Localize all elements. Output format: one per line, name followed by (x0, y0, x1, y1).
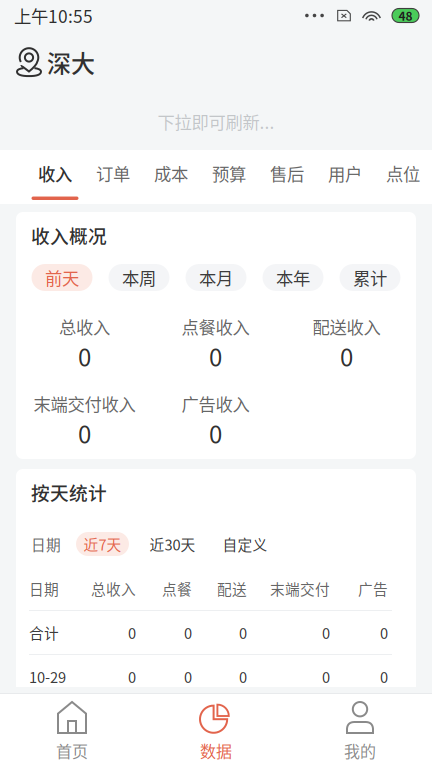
staticText: 末端交付 (270, 578, 330, 599)
staticText: 0 (209, 339, 222, 373)
staticText: 点位 (386, 161, 420, 186)
staticText: 订单 (96, 161, 130, 186)
button[interactable]: 点位 (374, 150, 432, 204)
staticText: 0 (239, 666, 247, 687)
button[interactable]: 成本 (142, 150, 200, 204)
staticText: 日期 (31, 533, 61, 555)
staticText: 0 (184, 666, 192, 687)
staticText: 用户 (328, 161, 362, 186)
staticText: 0 (239, 622, 247, 643)
staticText: 下拉即可刷新... (157, 109, 274, 134)
button[interactable]: 本月 (185, 264, 246, 291)
staticText: 总收入 (59, 314, 110, 339)
button[interactable]: 近30天 (150, 532, 195, 556)
staticText: 0 (380, 666, 388, 687)
staticText: 首页 (56, 739, 88, 762)
staticText: 0 (78, 339, 91, 373)
staticText: 成本 (154, 161, 188, 186)
button[interactable]: 售后 (258, 150, 316, 204)
staticText: 0 (184, 622, 192, 643)
staticText: 预算 (212, 161, 246, 186)
staticText: 10-29 (29, 666, 66, 687)
staticText: 合计 (29, 622, 59, 643)
button[interactable]: 首页 (0, 694, 144, 768)
staticText: 按天统计 (31, 478, 107, 505)
button[interactable]: 预算 (200, 150, 258, 204)
staticText: 本年 (276, 265, 310, 290)
staticText: 0 (322, 622, 330, 643)
staticText: 0 (209, 416, 222, 450)
staticText: 0 (128, 666, 136, 687)
button[interactable]: 本周 (108, 264, 169, 291)
staticText: 点餐收入 (181, 314, 249, 339)
staticText: 0 (322, 666, 330, 687)
staticText: 广告收入 (181, 391, 249, 416)
button[interactable]: 我的 (288, 694, 432, 768)
button[interactable]: 订单 (84, 150, 142, 204)
staticText: 数据 (200, 739, 232, 762)
staticText: 收入 (38, 161, 72, 186)
staticText: 点餐 (162, 578, 192, 599)
staticText: 配送 (217, 578, 247, 599)
button[interactable]: 前天 (31, 264, 92, 291)
staticText: 配送收入 (312, 314, 380, 339)
staticText: 自定义 (222, 533, 267, 555)
staticText: 0 (128, 622, 136, 643)
staticText: 我的 (344, 739, 376, 762)
button[interactable]: 深大 (0, 31, 432, 93)
staticText: 售后 (270, 161, 304, 186)
staticText: 本周 (122, 265, 156, 290)
staticText: 0 (78, 416, 91, 450)
staticText: 0 (340, 339, 353, 373)
button[interactable]: 用户 (316, 150, 374, 204)
staticText: 上午10:55 (14, 3, 93, 28)
staticText: 本月 (199, 265, 233, 290)
staticText: 日期 (29, 578, 59, 599)
button[interactable]: 累计 (339, 264, 400, 291)
staticText: 收入概况 (31, 221, 107, 248)
staticText: 累计 (353, 265, 387, 290)
button[interactable]: 自定义 (224, 532, 266, 556)
staticText: 总收入 (91, 578, 136, 599)
staticText: 近30天 (149, 533, 195, 555)
button[interactable]: 近7天 (76, 532, 129, 556)
button[interactable]: 数据 (144, 694, 288, 768)
button[interactable]: 本年 (262, 264, 323, 291)
staticText: 深大 (47, 45, 95, 79)
staticText: 近7天 (83, 533, 121, 555)
staticText: 前天 (45, 265, 79, 290)
button[interactable]: 收入 (26, 150, 84, 204)
staticText: 48 (398, 7, 412, 24)
staticText: 0 (380, 622, 388, 643)
staticText: 末端交付收入 (33, 391, 135, 416)
staticText: 广告 (358, 578, 388, 599)
